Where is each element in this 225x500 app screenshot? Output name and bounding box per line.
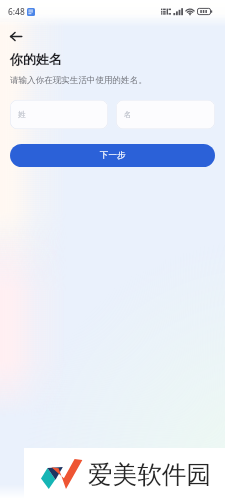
button[interactable]: 名: [116, 100, 215, 129]
staticText: 姓: [18, 110, 26, 119]
staticText: 名: [124, 110, 132, 119]
staticText: 6:48: [8, 6, 25, 17]
staticText: 下一步: [100, 150, 126, 161]
button[interactable]: 下一步: [10, 144, 215, 167]
button[interactable]: Back: [1, 22, 30, 51]
button[interactable]: 姓: [10, 100, 108, 129]
staticText: 请输入你在现实生活中使用的姓名。: [10, 75, 147, 86]
staticText: 你的姓名: [10, 51, 62, 67]
staticText: 爱美软件园: [88, 459, 211, 490]
